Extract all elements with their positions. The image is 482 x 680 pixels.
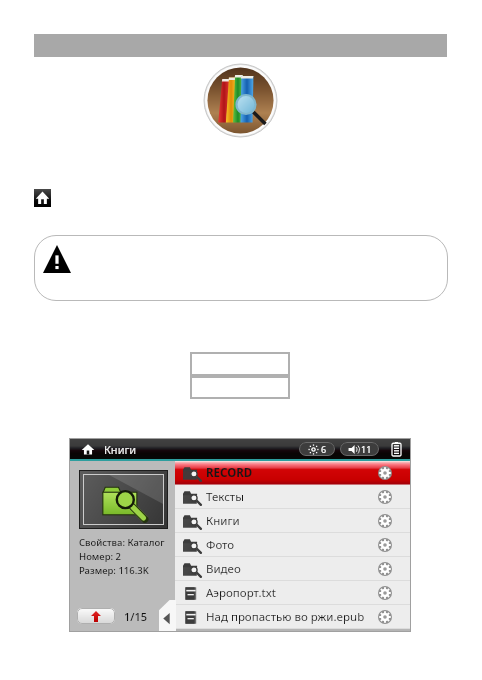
staticText: Над пропастью во ржи.epub bbox=[206, 609, 365, 625]
staticText: RECORD bbox=[206, 465, 253, 481]
button[interactable]: Аэропорт.txt bbox=[175, 581, 410, 605]
button[interactable]: Тексты bbox=[175, 485, 410, 509]
button[interactable]: Up one level bbox=[77, 608, 115, 624]
button[interactable]: Home bbox=[34, 189, 51, 207]
button[interactable]: Brightness bbox=[299, 442, 335, 456]
staticText: Книги bbox=[104, 442, 137, 457]
staticText: Книги bbox=[206, 513, 240, 529]
staticText: Размер: 116.3K bbox=[79, 564, 149, 577]
button[interactable]: Volume bbox=[340, 442, 379, 456]
staticText: Видео bbox=[206, 561, 241, 577]
staticText: Аэропорт.txt bbox=[206, 585, 276, 601]
staticText: Номер: 2 bbox=[79, 550, 122, 563]
button[interactable]: Над пропастью во ржи.epub bbox=[175, 605, 410, 629]
staticText: Свойства: Каталог bbox=[79, 536, 165, 549]
button[interactable]: Collapse panel bbox=[159, 600, 176, 631]
staticText: 6 bbox=[321, 443, 327, 455]
button[interactable]: RECORD bbox=[175, 461, 410, 485]
staticText: 11 bbox=[361, 443, 372, 455]
button[interactable]: Фото bbox=[175, 533, 410, 557]
button[interactable]: Книги bbox=[175, 509, 410, 533]
staticText: Фото bbox=[206, 537, 235, 553]
button[interactable]: Видео bbox=[175, 557, 410, 581]
staticText: 1/15 bbox=[124, 609, 148, 624]
staticText: Тексты bbox=[206, 489, 244, 505]
